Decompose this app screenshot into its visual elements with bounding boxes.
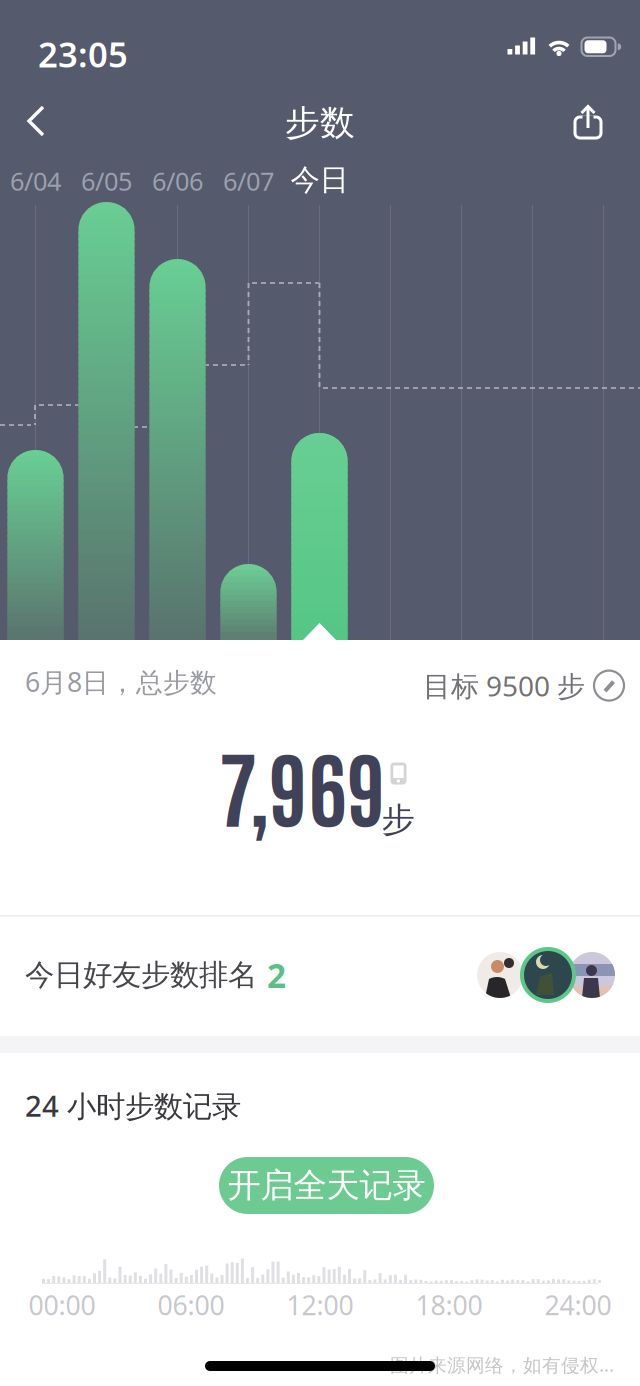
- staticText: 图片来源网络，如有侵权立马删除: [390, 1352, 630, 1377]
- staticText: 目标 9500 步: [423, 667, 585, 704]
- staticText: 今日: [290, 162, 348, 198]
- button[interactable]: 编辑目标: [423, 667, 624, 704]
- staticText: 6/05: [81, 164, 132, 198]
- staticText: 23:05: [38, 31, 128, 77]
- button[interactable]: 今日: [290, 162, 348, 198]
- staticText: 6月8日，总步数: [25, 664, 217, 699]
- staticText: 步数: [285, 102, 355, 144]
- staticText: 今日好友步数排名: [25, 957, 257, 993]
- staticText: 开启全天记录: [227, 1165, 425, 1206]
- button[interactable]: 开启全天记录: [219, 1157, 434, 1214]
- button[interactable]: 今日好友步数排名: [25, 949, 615, 1001]
- button[interactable]: Back: [13, 98, 59, 144]
- staticText: 2: [267, 953, 286, 997]
- staticText: 6/06: [152, 164, 203, 198]
- button[interactable]: 6/06: [152, 164, 203, 198]
- staticText: 18:00: [415, 1287, 482, 1323]
- staticText: 6/07: [223, 164, 274, 198]
- staticText: 12:00: [286, 1287, 353, 1323]
- button[interactable]: 6/07: [223, 164, 274, 198]
- staticText: 24 小时步数记录: [25, 1086, 241, 1125]
- staticText: 00:00: [28, 1287, 95, 1323]
- staticText: 06:00: [157, 1287, 224, 1323]
- button[interactable]: 6/04: [10, 164, 61, 198]
- staticText: 6/04: [10, 164, 61, 198]
- staticText: 7,969: [218, 730, 386, 838]
- button[interactable]: 6/05: [81, 164, 132, 198]
- staticText: 24:00: [544, 1287, 611, 1323]
- staticText: 步: [381, 799, 414, 840]
- button[interactable]: Share: [565, 97, 611, 143]
